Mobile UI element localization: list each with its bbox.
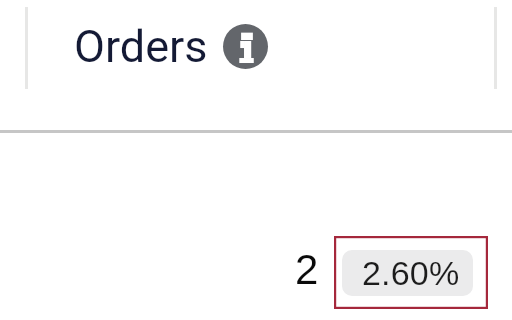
staticText: Orders	[74, 20, 208, 73]
button[interactable]: 2.60%	[342, 250, 473, 296]
button[interactable]: 2	[295, 246, 319, 293]
button[interactable]: Selected comparison cell	[334, 236, 488, 309]
staticText: 2.60%	[362, 254, 460, 292]
button[interactable]: More information about Orders	[223, 24, 268, 69]
button[interactable]: Orders	[74, 20, 268, 73]
